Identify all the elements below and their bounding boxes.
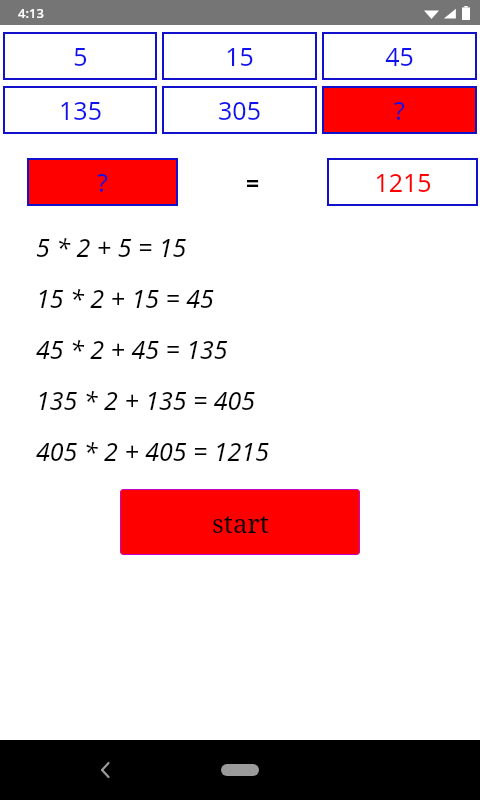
button[interactable]: ? (27, 158, 178, 206)
button[interactable]: start (120, 489, 360, 555)
button[interactable]: Home (218, 757, 262, 783)
staticText: 135 (59, 93, 102, 127)
staticText: 45 (385, 39, 414, 73)
button[interactable]: 15 (162, 32, 317, 80)
staticText: 5 * 2 + 5 = 15 (36, 230, 187, 264)
staticText: 45 * 2 + 45 = 135 (36, 332, 228, 366)
staticText: 1215 (374, 165, 432, 199)
staticText: 5 (73, 39, 88, 73)
button[interactable]: 5 (3, 32, 157, 80)
staticText: = (246, 167, 260, 198)
staticText: ? (97, 165, 108, 199)
button[interactable]: 305 (162, 86, 317, 134)
staticText: start (212, 505, 269, 540)
staticText: ? (394, 93, 405, 127)
staticText: 405 * 2 + 405 = 1215 (36, 434, 269, 468)
button[interactable]: 45 (322, 32, 477, 80)
staticText: 305 (218, 93, 261, 127)
staticText: 15 * 2 + 15 = 45 (36, 281, 214, 315)
button[interactable]: 1215 (327, 158, 478, 206)
staticText: 135 * 2 + 135 = 405 (36, 383, 256, 417)
staticText: 15 (225, 39, 254, 73)
button[interactable]: ? (322, 86, 477, 134)
staticText: 4:13 (18, 4, 44, 22)
button[interactable]: Back (88, 752, 124, 788)
button[interactable]: 135 (3, 86, 157, 134)
